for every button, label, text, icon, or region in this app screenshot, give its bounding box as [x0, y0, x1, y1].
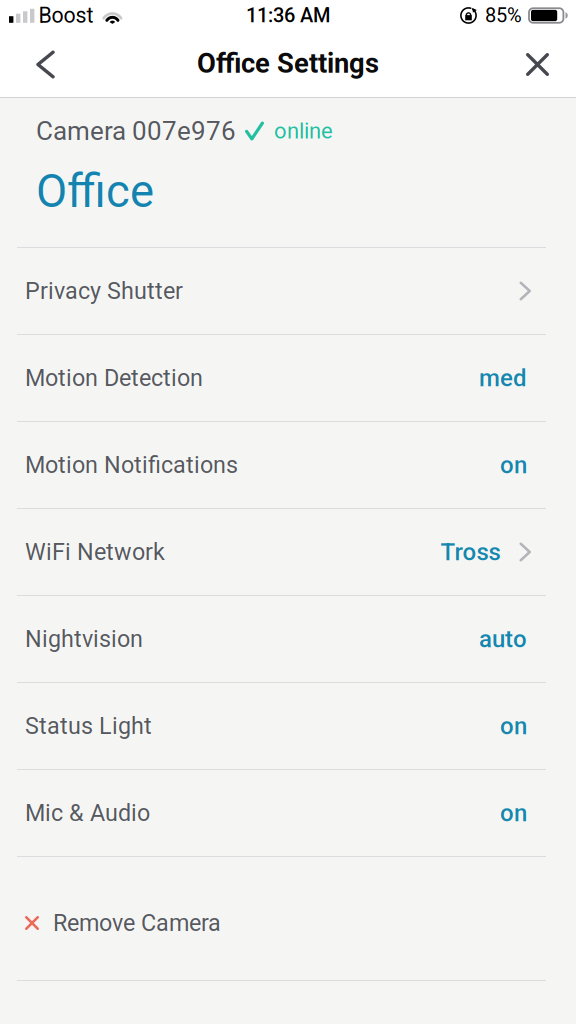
staticText: WiFi Network	[25, 538, 165, 566]
button[interactable]: Motion Detection	[0, 335, 576, 421]
staticText: Mic & Audio	[25, 799, 150, 827]
button[interactable]: Status Light	[0, 683, 576, 769]
button[interactable]: Remove Camera	[0, 857, 576, 980]
staticText: Status Light	[25, 712, 152, 740]
staticText: auto	[479, 625, 527, 653]
button[interactable]: Nightvision	[0, 596, 576, 682]
staticText: on	[500, 712, 527, 740]
button[interactable]: Back	[18, 38, 73, 91]
staticText: Motion Notifications	[25, 451, 238, 479]
button[interactable]: Mic & Audio	[0, 770, 576, 856]
staticText: online	[274, 118, 333, 144]
button[interactable]: Close	[510, 38, 565, 91]
staticText: 11:36 AM	[246, 4, 330, 27]
staticText: on	[500, 799, 527, 827]
staticText: med	[479, 364, 527, 392]
staticText: Boost	[38, 3, 93, 28]
button[interactable]: Privacy Shutter	[0, 248, 576, 334]
staticText: Remove Camera	[53, 909, 221, 937]
button[interactable]: WiFi Network	[0, 509, 576, 595]
staticText: Nightvision	[25, 625, 143, 653]
staticText: Office	[36, 165, 154, 218]
staticText: 85%	[485, 4, 522, 27]
staticText: Motion Detection	[25, 364, 203, 392]
staticText: Camera 007e976	[36, 116, 236, 146]
staticText: Tross	[440, 538, 500, 566]
staticText: Office Settings	[197, 47, 379, 79]
staticText: on	[500, 451, 527, 479]
staticText: Privacy Shutter	[25, 277, 183, 305]
button[interactable]: Motion Notifications	[0, 422, 576, 508]
